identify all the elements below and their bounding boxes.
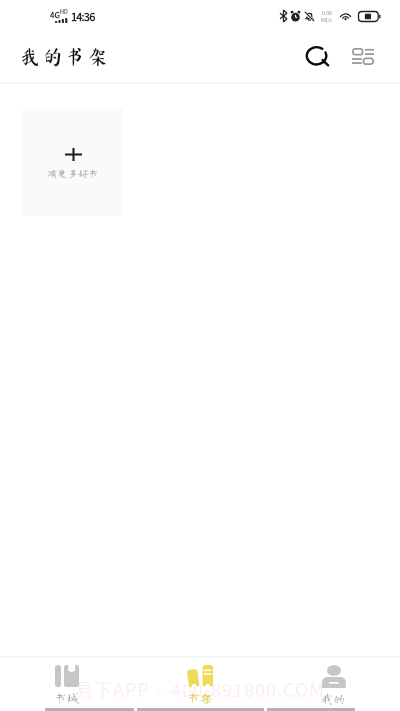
staticText: KB/s xyxy=(321,16,332,23)
staticText: 我的 xyxy=(321,692,346,704)
staticText: HD xyxy=(60,8,68,16)
button[interactable]: 书架 xyxy=(134,656,267,711)
button[interactable]: Switch list layout xyxy=(341,34,385,78)
staticText: 14:36 xyxy=(71,8,95,24)
button[interactable]: Search xyxy=(296,34,340,78)
staticText: 书城 xyxy=(55,691,80,703)
staticText: 我的书架 xyxy=(20,46,110,66)
button[interactable]: 我的 xyxy=(267,656,400,711)
button[interactable]: 有更多好书 xyxy=(22,108,123,216)
staticText: 有更多好书 xyxy=(47,168,99,178)
button[interactable]: 书城 xyxy=(0,656,134,711)
staticText: 易下APP · 400-891800.COM xyxy=(75,676,325,702)
staticText: 书架 xyxy=(188,691,213,703)
staticText: 0.00 xyxy=(322,9,332,16)
staticText: 4G xyxy=(50,9,60,21)
